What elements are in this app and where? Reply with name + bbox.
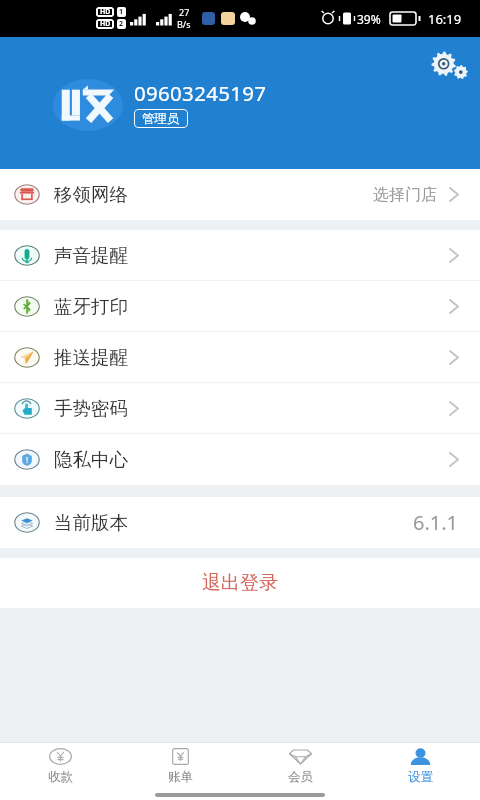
staticText: 管理员 [142, 111, 180, 127]
button[interactable]: 隐私中心 [0, 434, 480, 485]
staticText: 27 [179, 6, 190, 18]
staticText: 手势密码 [54, 397, 128, 420]
staticText: 退出登录 [202, 571, 278, 595]
staticText: B/s [177, 18, 191, 30]
button[interactable]: 手势密码 [0, 383, 480, 433]
button[interactable]: 会员 [240, 743, 360, 790]
staticText: 16:19 [428, 10, 462, 28]
staticText: HD [100, 7, 111, 17]
staticText: 隐私中心 [54, 448, 128, 471]
button[interactable]: Settings [420, 43, 472, 95]
staticText: 声音提醒 [54, 244, 128, 267]
button[interactable]: 账单 [120, 743, 240, 790]
staticText: 账单 [168, 769, 193, 785]
staticText: 设置 [408, 769, 433, 785]
staticText: 当前版本 [54, 511, 128, 534]
staticText: 39% [357, 11, 381, 27]
staticText: 蓝牙打印 [54, 295, 128, 318]
staticText: 2 [119, 19, 124, 29]
staticText: 移领网络 [54, 183, 128, 206]
staticText: 1 [119, 7, 124, 17]
button[interactable]: 推送提醒 [0, 332, 480, 382]
button[interactable]: 当前版本 [0, 497, 480, 548]
button[interactable]: 收款 [0, 743, 120, 790]
staticText: 收款 [48, 769, 73, 785]
button[interactable]: 蓝牙打印 [0, 281, 480, 331]
staticText: 6.1.1 [413, 509, 459, 536]
button[interactable]: 声音提醒 [0, 230, 480, 280]
button[interactable]: 设置 [360, 743, 480, 790]
button[interactable]: 移领网络 [0, 169, 480, 220]
staticText: 09603245197 [134, 79, 267, 107]
staticText: 会员 [288, 769, 313, 785]
staticText: 推送提醒 [54, 346, 128, 369]
staticText: 选择门店 [373, 185, 437, 205]
button[interactable]: 退出登录 [0, 558, 480, 608]
staticText: HD [100, 19, 111, 29]
